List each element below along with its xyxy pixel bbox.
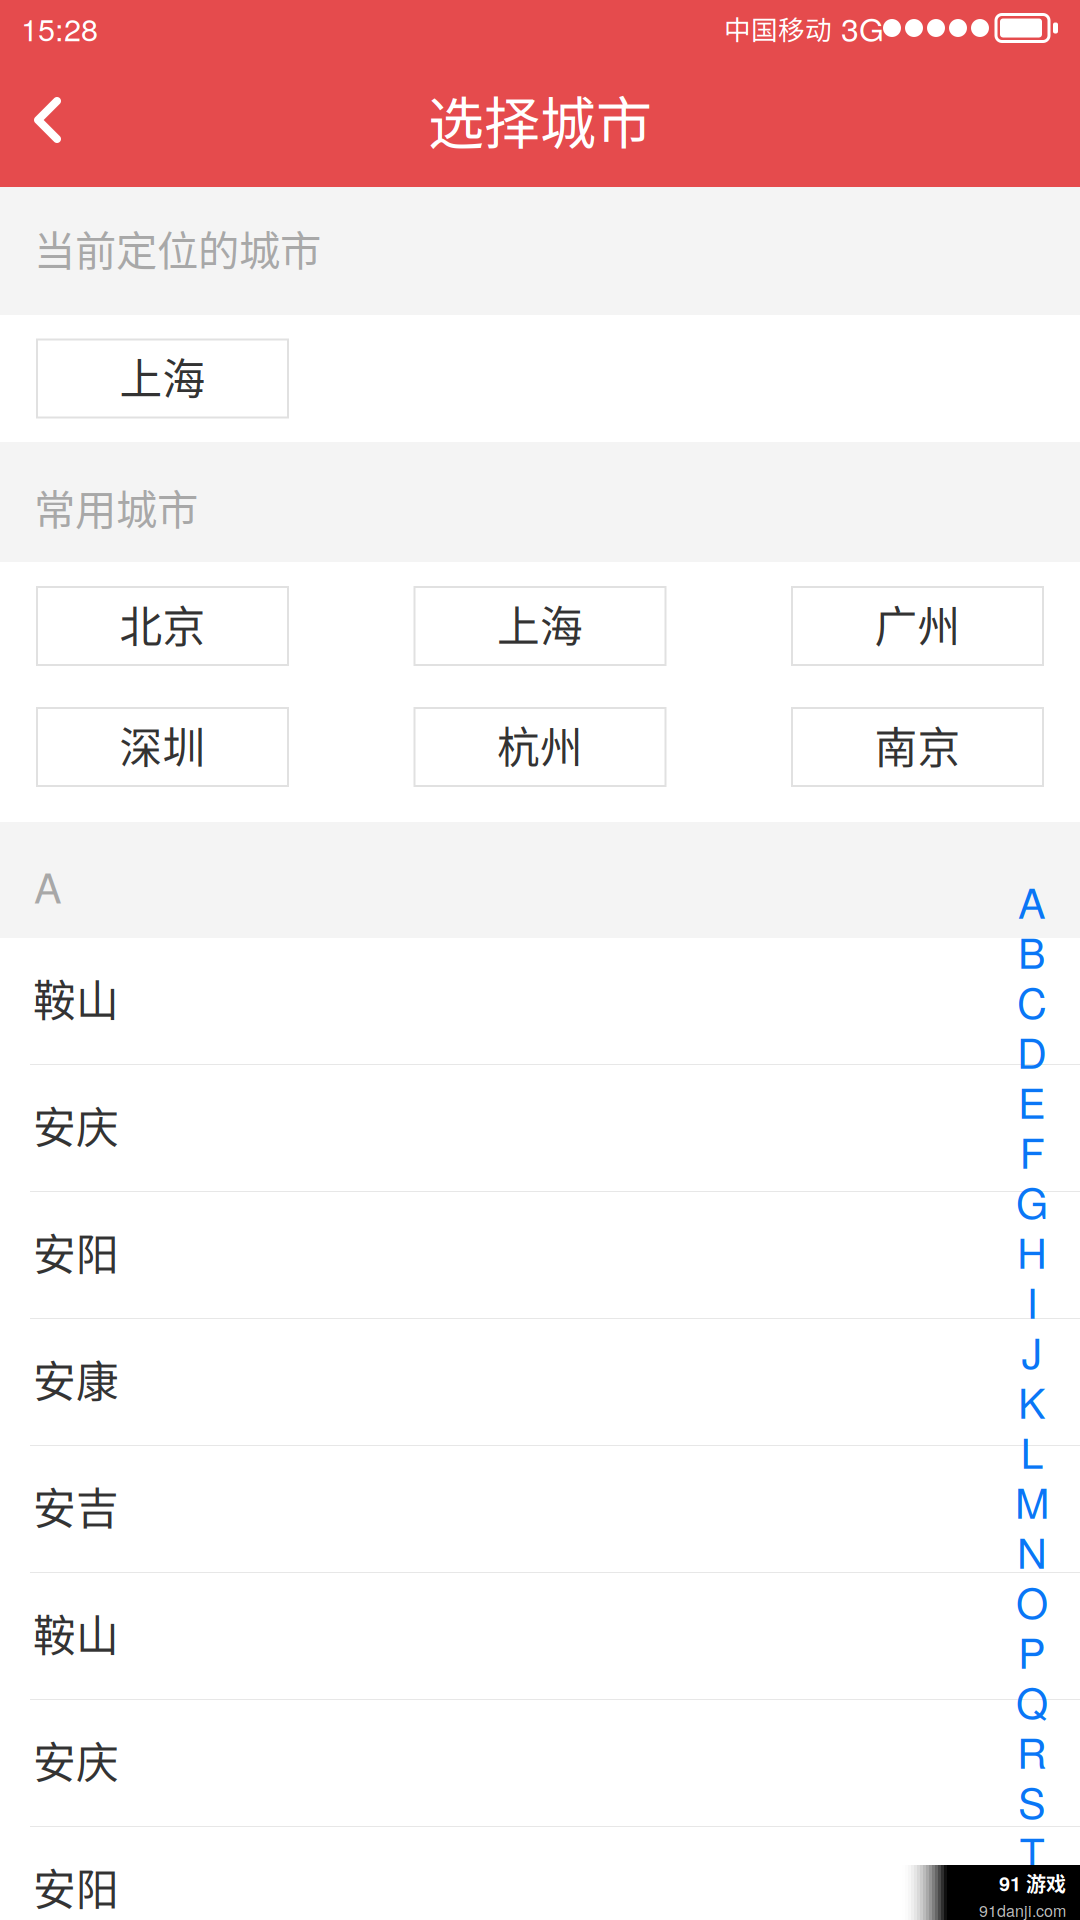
staticText: 游戏 [1021, 1869, 1066, 1898]
staticText: I [1026, 1271, 1037, 1331]
button[interactable]: E [1009, 1076, 1055, 1126]
button[interactable]: Back [0, 68, 118, 187]
button[interactable]: 南京 [792, 708, 1043, 786]
button[interactable]: H [1009, 1226, 1055, 1276]
button[interactable]: 上海 [37, 339, 288, 417]
staticText: A [1018, 871, 1046, 931]
staticText: R [1017, 1721, 1047, 1781]
button[interactable]: D [1009, 1026, 1055, 1076]
staticText: 当前定位的城市 [34, 218, 321, 278]
button[interactable]: 鞍山 [0, 938, 1080, 1065]
button[interactable]: C [1009, 976, 1055, 1026]
staticText: C [1017, 971, 1047, 1031]
staticText: Q [1016, 1671, 1048, 1731]
staticText: 3G [832, 5, 884, 51]
staticText: 中国移动 [724, 9, 832, 47]
staticText: 上海 [119, 345, 205, 407]
button[interactable]: M [1009, 1476, 1055, 1526]
button[interactable]: 安吉 [0, 1446, 1080, 1573]
button[interactable]: K [1009, 1376, 1055, 1426]
staticText: 常用城市 [34, 477, 198, 537]
button[interactable]: 鞍山 [0, 1573, 1080, 1700]
button[interactable]: 安康 [0, 1319, 1080, 1446]
staticText: 安吉 [33, 1475, 119, 1537]
button[interactable]: A [1009, 876, 1055, 926]
staticText: D [1017, 1021, 1047, 1081]
button[interactable]: I [1009, 1276, 1055, 1326]
staticText: P [1018, 1621, 1046, 1681]
staticText: 深圳 [119, 714, 205, 776]
staticText: 广州 [874, 593, 960, 655]
button[interactable]: J [1009, 1326, 1055, 1376]
button[interactable]: B [1009, 926, 1055, 976]
staticText: 安康 [33, 1348, 119, 1410]
button[interactable]: T [1009, 1826, 1055, 1876]
button[interactable]: Q [1009, 1676, 1055, 1726]
staticText: G [1016, 1171, 1048, 1231]
staticText: 91danji.com [979, 1898, 1066, 1920]
staticText: 安庆 [33, 1094, 119, 1156]
staticText: 91 [999, 1869, 1021, 1897]
button[interactable]: N [1009, 1526, 1055, 1576]
staticText: B [1018, 921, 1046, 981]
staticText: O [1016, 1571, 1048, 1631]
button[interactable]: 杭州 [414, 708, 665, 786]
button[interactable]: 广州 [792, 587, 1043, 665]
staticText: K [1018, 1371, 1046, 1431]
staticText: 安阳 [33, 1856, 119, 1918]
staticText: 安庆 [33, 1729, 119, 1791]
staticText: 鞍山 [33, 1602, 119, 1664]
staticText: F [1019, 1121, 1044, 1181]
button[interactable]: 深圳 [37, 708, 288, 786]
staticText: A [34, 856, 62, 915]
button[interactable]: G [1009, 1176, 1055, 1226]
staticText: J [1021, 1321, 1042, 1381]
button[interactable]: 北京 [37, 587, 288, 665]
button[interactable]: O [1009, 1576, 1055, 1626]
staticText: 南京 [874, 714, 960, 776]
staticText: S [1018, 1771, 1046, 1831]
staticText: 杭州 [497, 714, 583, 776]
button[interactable]: R [1009, 1726, 1055, 1776]
button[interactable]: 上海 [414, 587, 665, 665]
staticText: 选择城市 [428, 78, 652, 160]
button[interactable]: L [1009, 1426, 1055, 1476]
button[interactable]: P [1009, 1626, 1055, 1676]
staticText: L [1020, 1421, 1043, 1481]
staticText: M [1015, 1471, 1049, 1531]
button[interactable]: 安庆 [0, 1700, 1080, 1827]
staticText: H [1017, 1221, 1047, 1281]
staticText: 北京 [119, 593, 205, 655]
staticText: N [1017, 1521, 1047, 1581]
button[interactable]: 安庆 [0, 1065, 1080, 1192]
button[interactable]: F [1009, 1126, 1055, 1176]
staticText: 15:28 [21, 6, 98, 50]
staticText: 上海 [497, 593, 583, 655]
button[interactable]: S [1009, 1776, 1055, 1826]
staticText: E [1018, 1071, 1046, 1131]
button[interactable]: 安阳 [0, 1192, 1080, 1319]
staticText: T [1019, 1821, 1044, 1881]
staticText: 鞍山 [33, 967, 119, 1029]
staticText: 安阳 [33, 1221, 119, 1283]
button[interactable]: 安阳 [0, 1827, 1080, 1920]
